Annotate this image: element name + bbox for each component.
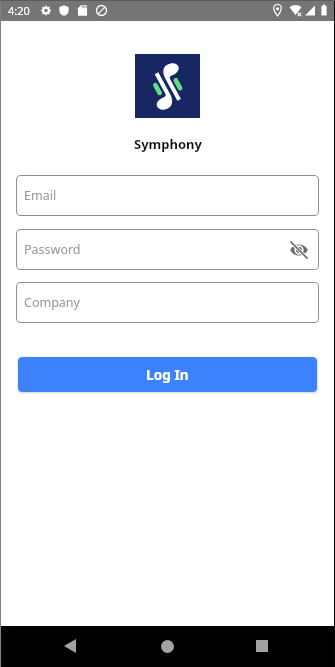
staticText: Log In [146,365,189,384]
button[interactable]: Show password [289,240,309,260]
button[interactable]: Email [16,175,319,216]
button[interactable]: Recent apps [242,626,282,666]
staticText: Symphony [134,135,202,153]
button[interactable]: Home [147,626,187,666]
staticText: 4:20 [8,3,30,18]
staticText: Password [24,241,81,258]
button[interactable]: Log In [18,357,317,392]
staticText: Company [24,294,80,311]
button[interactable]: Password [16,229,319,270]
button[interactable]: Company [16,282,319,323]
button[interactable]: Back [50,626,90,666]
staticText: Email [24,187,57,204]
